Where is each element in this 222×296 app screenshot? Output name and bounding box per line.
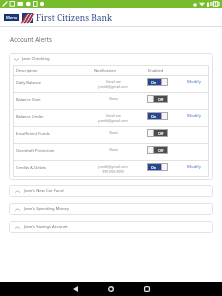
button[interactable]: Modify [187,163,201,169]
staticText: 8:13 [210,1,220,8]
button[interactable]: Jane's New Car Fund [9,185,213,197]
staticText: Off [158,131,164,136]
staticText: Enabled [148,68,164,73]
staticText: Balance Under [16,114,44,119]
staticText: None [109,130,118,135]
staticText: Insufficient Funds [16,131,50,136]
staticText: Daily Balance [16,80,42,85]
button[interactable]: Recent apps [136,282,158,296]
button[interactable]: Off [147,129,168,137]
staticText: None [109,96,118,101]
staticText: Balance Over [16,97,41,102]
staticText: Notification [94,68,116,73]
staticText: None [109,147,118,152]
button[interactable]: Off [147,95,168,103]
staticText: Jane Checking [22,56,50,62]
button[interactable]: Modify [187,78,201,84]
button[interactable]: Modify [187,112,201,118]
staticText: Jane's New Car Fund [24,188,64,194]
button[interactable]: On [147,112,168,120]
button[interactable]: Off [147,146,168,154]
staticText: Overdraft Protection [16,148,55,153]
button[interactable]: Home [100,282,122,296]
staticText: Email me [106,113,121,118]
staticText: jsmith@gmail.com [98,118,128,123]
staticText: Email me [106,79,121,84]
staticText: First Citizens Bank [36,12,113,23]
staticText: On [151,165,157,170]
button[interactable]: Back [64,282,86,296]
staticText: jsmith@gmail.com [98,164,128,169]
staticText: Menu [6,15,18,21]
staticText: Account Alerts [10,35,52,43]
staticText: Off [158,148,164,153]
staticText: 999-999-9999 [102,169,124,174]
staticText: Jane's Spending Money [24,206,69,212]
staticText: Credits & Debits [16,165,47,170]
button[interactable]: Jane's Savings Account [9,221,213,233]
button[interactable]: On [147,78,168,86]
staticText: Description [16,68,38,73]
button[interactable]: Menu [4,14,19,21]
button[interactable]: Jane's Spending Money [9,203,213,215]
staticText: On [151,80,157,85]
button[interactable]: Jane Checking [9,53,213,65]
staticText: jsmith@gmail.com [98,84,128,89]
staticText: Jane's Savings Account [24,224,68,230]
staticText: On [151,114,157,119]
button[interactable]: On [147,163,168,171]
staticText: Off [158,97,164,102]
